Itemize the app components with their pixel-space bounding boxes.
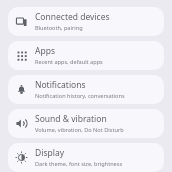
other: Display bbox=[16, 152, 27, 163]
staticText: Notifications bbox=[35, 79, 86, 91]
other: Apps bbox=[16, 50, 27, 61]
staticText: Bluetooth, pairing bbox=[35, 24, 83, 32]
button[interactable]: Notifications bbox=[8, 75, 164, 104]
other: Notifications bbox=[16, 84, 27, 95]
staticText: Volume, vibration, Do Not Disturb bbox=[35, 126, 124, 134]
staticText: Recent apps, default apps bbox=[35, 58, 103, 66]
other: Connected devices bbox=[16, 16, 27, 27]
button[interactable]: Sound and vibration bbox=[8, 109, 164, 138]
button[interactable]: Apps bbox=[8, 41, 164, 70]
staticText: Display bbox=[35, 147, 64, 159]
staticText: Dark theme, font size, brightness bbox=[35, 160, 123, 168]
staticText: Notification history, conversations bbox=[35, 92, 125, 100]
button[interactable]: Display bbox=[8, 143, 164, 172]
other: Sound and vibration bbox=[16, 118, 27, 129]
staticText: Apps bbox=[35, 45, 55, 57]
staticText: Sound & vibration bbox=[35, 113, 107, 125]
staticText: Connected devices bbox=[35, 11, 110, 23]
button[interactable]: Connected devices bbox=[8, 7, 164, 36]
